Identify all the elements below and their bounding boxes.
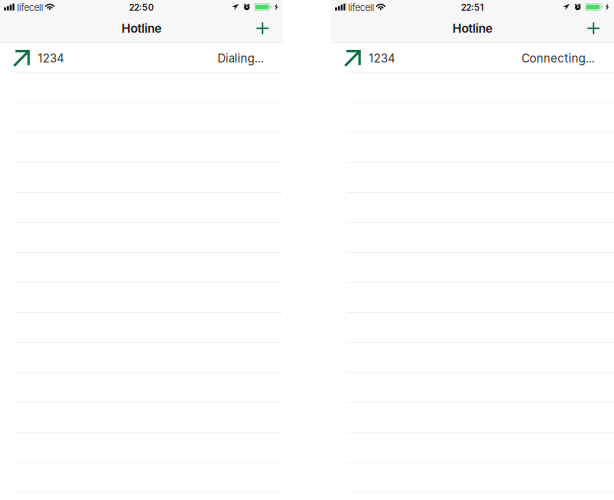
staticText: lifecell	[348, 2, 374, 13]
button[interactable]: New call	[573, 14, 614, 43]
button[interactable]: New call	[242, 14, 283, 43]
staticText: Dialing...	[217, 51, 263, 65]
staticText: 22:50	[129, 2, 154, 13]
staticText: 1234	[369, 51, 395, 65]
staticText: Connecting...	[521, 51, 594, 65]
button[interactable]: 1234	[0, 43, 283, 73]
staticText: 22:51	[461, 2, 484, 13]
staticText: 1234	[38, 51, 64, 65]
button[interactable]: 1234	[331, 43, 614, 73]
staticText: Hotline	[452, 21, 492, 35]
staticText: lifecell	[17, 2, 43, 13]
staticText: Hotline	[121, 21, 161, 35]
